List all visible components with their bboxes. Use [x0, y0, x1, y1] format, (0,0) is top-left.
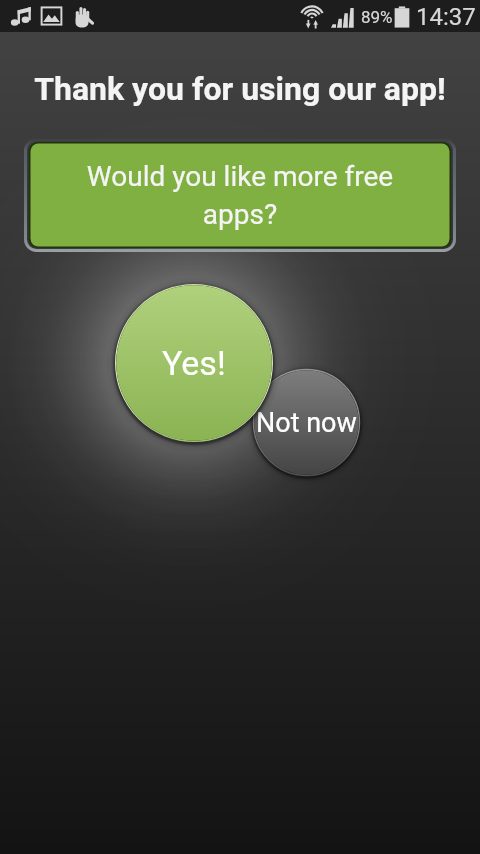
- button[interactable]: Would you like more free apps?: [25, 138, 455, 252]
- other: Screenshot captured: [40, 6, 63, 26]
- button[interactable]: Not now: [243, 359, 370, 486]
- other: Music playing: [8, 4, 32, 28]
- button[interactable]: Yes!: [104, 273, 284, 453]
- other: Battery 89 percent: [394, 6, 410, 28]
- staticText: Would you like more free apps?: [53, 160, 427, 231]
- staticText: Not now: [256, 407, 357, 439]
- staticText: 89%: [361, 7, 393, 27]
- staticText: 14:37: [416, 3, 476, 31]
- staticText: Thank you for using our app!: [0, 70, 480, 108]
- other: Air gesture: [70, 4, 95, 29]
- staticText: Yes!: [162, 343, 226, 383]
- other: Wi-Fi connected: [299, 5, 325, 29]
- other: Mobile signal strength: [330, 6, 355, 29]
